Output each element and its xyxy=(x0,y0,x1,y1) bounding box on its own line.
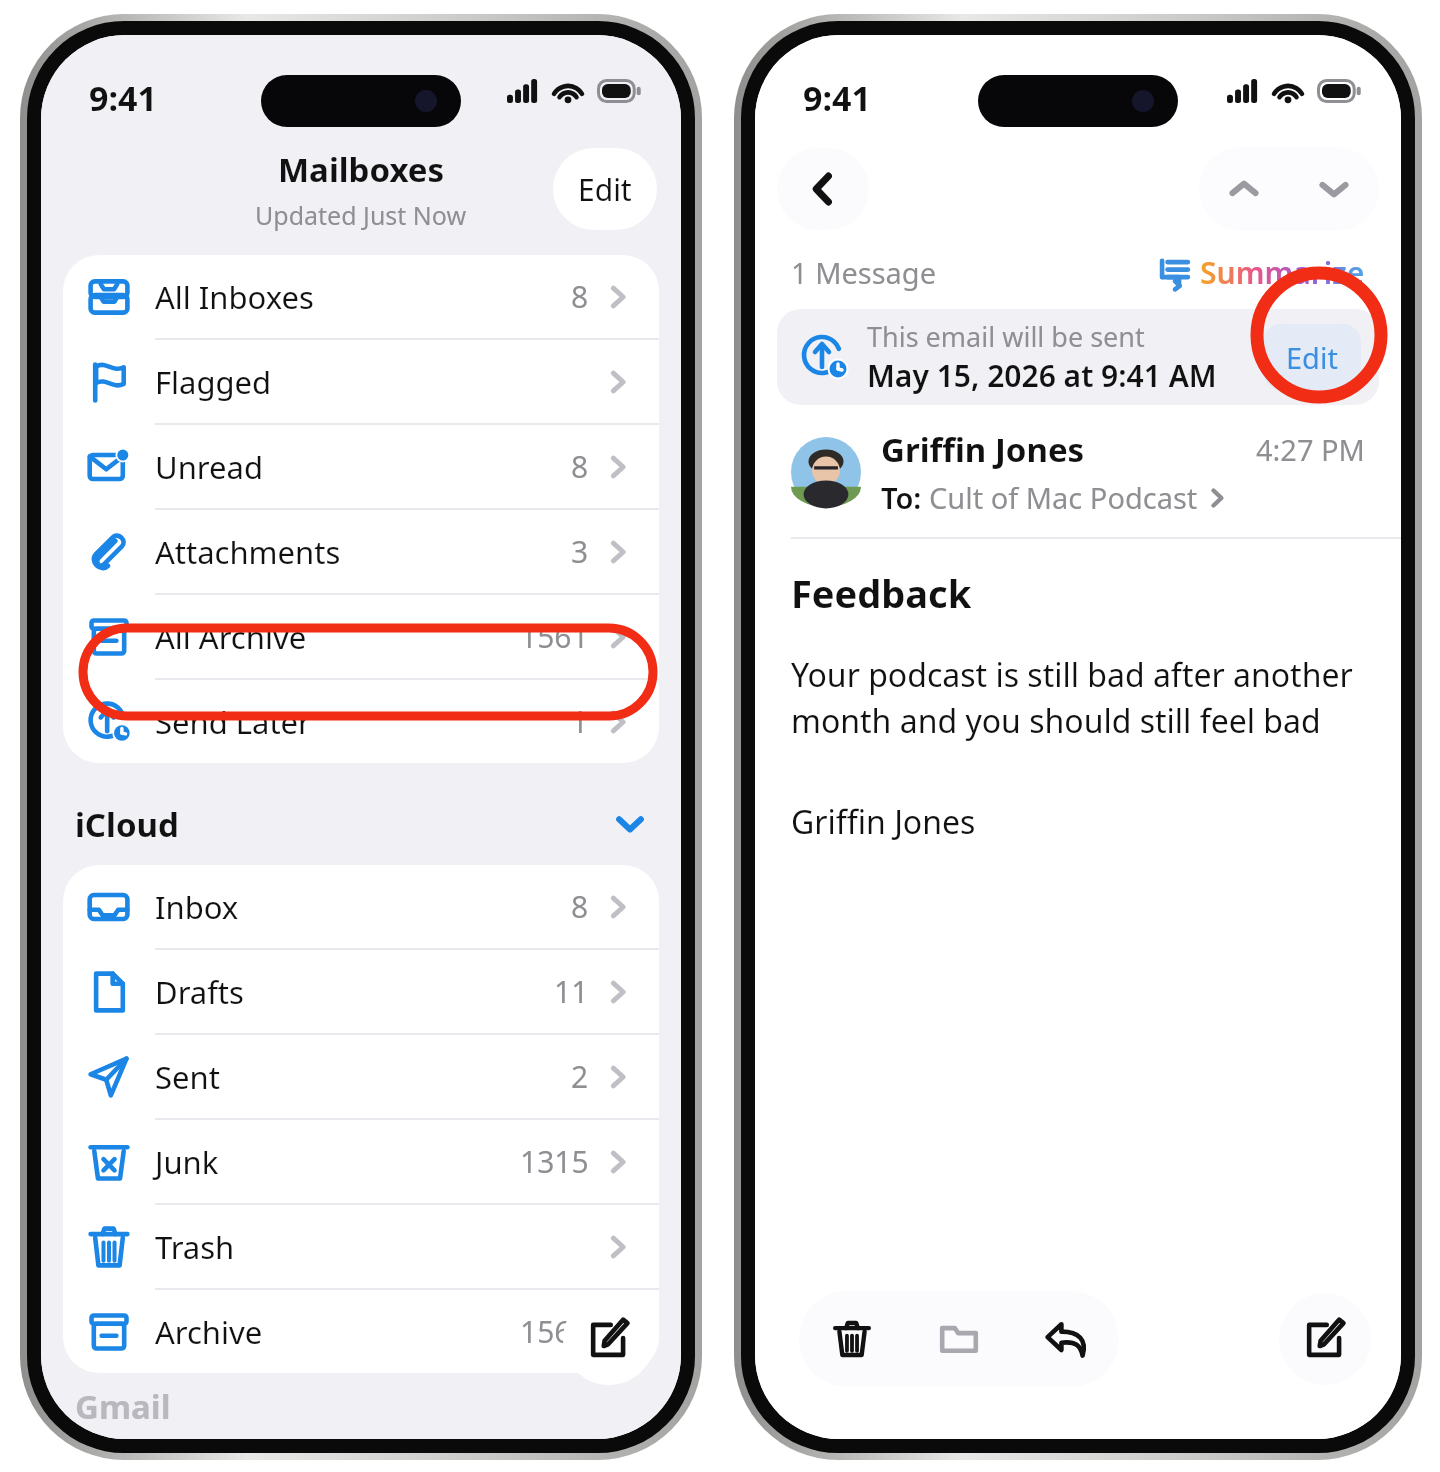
button[interactable]: Previous message xyxy=(1199,147,1289,231)
button[interactable]: Attachments xyxy=(63,510,659,593)
button[interactable]: Next message xyxy=(1289,147,1379,231)
button[interactable]: Summarize xyxy=(1158,252,1365,293)
staticText: Archive xyxy=(155,1311,263,1353)
staticText: Trash xyxy=(155,1226,235,1268)
button[interactable]: Unread xyxy=(63,425,659,508)
staticText: To: xyxy=(881,478,929,517)
button[interactable]: iCloud xyxy=(75,791,647,857)
staticText: 11 xyxy=(554,971,589,1012)
button[interactable]: Move to folder xyxy=(905,1291,1012,1387)
button[interactable]: Delete xyxy=(799,1291,905,1387)
button[interactable]: All Archive xyxy=(63,595,659,678)
button[interactable]: Send Later xyxy=(63,680,659,763)
staticText: 3 xyxy=(571,531,589,572)
button[interactable]: Sent xyxy=(63,1035,659,1118)
staticText: 1561 xyxy=(520,1311,589,1352)
staticText: 1561 xyxy=(520,616,589,657)
staticText: All Archive xyxy=(155,616,307,658)
staticText: 9:41 xyxy=(803,75,871,121)
staticText: 2 xyxy=(571,1056,589,1097)
staticText: 8 xyxy=(571,446,589,487)
staticText: Mailboxes xyxy=(278,147,445,192)
button[interactable]: Edit xyxy=(1263,324,1361,390)
staticText: Edit xyxy=(578,169,632,210)
staticText: Edit xyxy=(1286,338,1338,377)
staticText: May 15, 2026 at 9:41 AM xyxy=(867,355,1217,396)
staticText: Cult of Mac Podcast xyxy=(929,478,1198,517)
staticText: Attachments xyxy=(155,531,341,573)
button[interactable]: Inbox xyxy=(63,865,659,948)
staticText: Griffin Jones xyxy=(881,427,1085,472)
button[interactable]: Archive xyxy=(63,1290,659,1373)
staticText: Sent xyxy=(155,1056,220,1098)
staticText: Drafts xyxy=(155,971,244,1013)
staticText: Send Later xyxy=(155,701,311,743)
staticText: All Inboxes xyxy=(155,276,314,318)
button[interactable]: Back xyxy=(777,148,869,230)
staticText: 8 xyxy=(571,276,589,317)
staticText: Summarize xyxy=(1200,252,1365,293)
button[interactable]: Compose xyxy=(1279,1293,1371,1385)
button[interactable]: Junk xyxy=(63,1120,659,1203)
staticText: 9:41 xyxy=(89,75,157,121)
button[interactable]: Trash xyxy=(63,1205,659,1288)
staticText: 4:27 PM xyxy=(1256,430,1365,469)
staticText: 1 xyxy=(571,701,589,742)
staticText: This email will be sent xyxy=(867,318,1145,355)
staticText: Inbox xyxy=(155,886,239,928)
button[interactable]: All Inboxes xyxy=(63,255,659,338)
other: Collapse iCloud xyxy=(613,807,647,841)
button[interactable]: Edit xyxy=(553,148,657,230)
staticText: Updated Just Now xyxy=(255,198,467,232)
staticText: iCloud xyxy=(75,802,179,847)
staticText: Your podcast is still bad after another … xyxy=(791,653,1365,742)
staticText: Feedback xyxy=(791,567,972,619)
staticText: Griffin Jones xyxy=(791,800,976,844)
button[interactable]: To: xyxy=(881,478,1228,517)
button[interactable]: Drafts xyxy=(63,950,659,1033)
button[interactable]: Reply xyxy=(1012,1291,1119,1387)
staticText: 1315 xyxy=(520,1141,589,1182)
staticText: 8 xyxy=(571,886,589,927)
button[interactable]: Compose xyxy=(563,1293,655,1385)
staticText: 1 Message xyxy=(791,253,937,292)
staticText: Junk xyxy=(155,1141,219,1183)
staticText: Flagged xyxy=(155,361,272,403)
staticText: Gmail xyxy=(75,1384,171,1429)
button[interactable]: Flagged xyxy=(63,340,659,423)
staticText: Unread xyxy=(155,446,263,488)
